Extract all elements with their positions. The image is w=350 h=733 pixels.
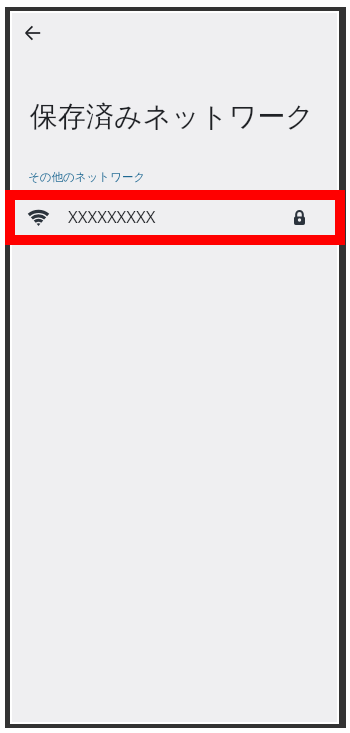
staticText: XXXXXXXXX [68, 205, 156, 228]
button[interactable]: Back [11, 11, 55, 55]
staticText: 保存済みネットワーク [30, 99, 314, 134]
button[interactable]: XXXXXXXXX [12, 192, 337, 240]
staticText: その他のネットワーク [28, 170, 146, 184]
